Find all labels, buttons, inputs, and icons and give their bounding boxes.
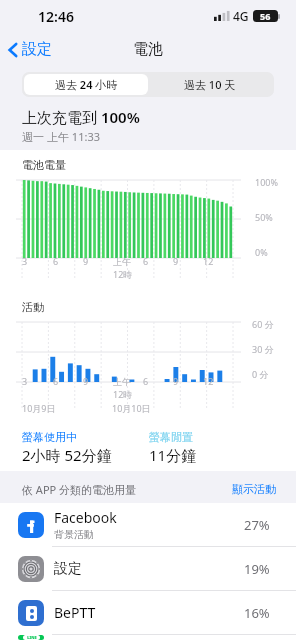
- button[interactable]: Facebook: [0, 503, 296, 546]
- staticText: 設定: [22, 40, 52, 59]
- staticText: 0 分: [252, 368, 269, 380]
- staticText: 60 分: [252, 318, 274, 330]
- staticText: 6: [53, 375, 59, 387]
- button[interactable]: 過去 24 小時: [24, 74, 148, 95]
- other: BePTT: [18, 600, 44, 626]
- staticText: 週一: [22, 129, 47, 144]
- staticText: 電池電量: [22, 158, 66, 172]
- staticText: 螢幕閒置: [149, 430, 193, 444]
- staticText: 19%: [244, 560, 278, 578]
- staticText: 螢幕使用中: [22, 430, 77, 444]
- staticText: 上午 12時: [113, 375, 143, 400]
- staticText: 設定: [54, 560, 82, 578]
- other: 設定: [18, 556, 44, 582]
- staticText: 10月10日: [112, 402, 151, 414]
- staticText: 3: [22, 255, 28, 267]
- staticText: 6: [143, 255, 149, 267]
- other: LINE: [18, 635, 44, 640]
- staticText: 活動: [22, 300, 44, 314]
- staticText: 56: [260, 10, 271, 22]
- staticText: 9: [83, 255, 89, 267]
- button[interactable]: 過去 10 天: [148, 74, 272, 95]
- staticText: 背景活動: [54, 528, 94, 541]
- staticText: 12:46: [38, 7, 74, 26]
- button[interactable]: BePTT: [0, 591, 296, 634]
- button[interactable]: 顯示活動: [230, 480, 278, 498]
- staticText: 9: [173, 255, 179, 267]
- staticText: 4G: [233, 8, 249, 24]
- staticText: 16%: [244, 604, 278, 622]
- staticText: 上次充電到 100%: [22, 107, 140, 127]
- staticText: 電池: [133, 40, 163, 59]
- staticText: 上午 12時: [113, 255, 143, 280]
- staticText: 6: [53, 255, 59, 267]
- staticText: 0%: [255, 246, 268, 258]
- other: Facebook: [18, 512, 44, 538]
- staticText: 27%: [244, 516, 278, 534]
- staticText: 2小時 52分鐘: [22, 445, 112, 465]
- staticText: 12: [203, 375, 214, 387]
- staticText: 10月9日: [22, 402, 56, 414]
- staticText: 30 分: [252, 343, 274, 355]
- staticText: 6: [143, 375, 149, 387]
- staticText: 9: [83, 375, 89, 387]
- staticText: 9: [173, 375, 179, 387]
- staticText: 過去 10 天: [184, 77, 236, 92]
- staticText: 3: [22, 375, 28, 387]
- staticText: 上午 11:33: [47, 129, 100, 144]
- staticText: BePTT: [54, 603, 96, 622]
- staticText: 依 APP 分類的電池用量: [22, 482, 230, 497]
- staticText: Facebook: [54, 508, 117, 527]
- button[interactable]: 設定: [0, 36, 60, 63]
- staticText: 12: [203, 255, 214, 267]
- button[interactable]: 設定: [0, 547, 296, 590]
- staticText: 50%: [255, 211, 273, 223]
- staticText: 過去 24 小時: [55, 77, 118, 92]
- staticText: 11分鐘: [149, 445, 197, 465]
- button[interactable]: LINE: [0, 635, 296, 640]
- staticText: LINE: [27, 635, 37, 640]
- staticText: 顯示活動: [232, 482, 276, 496]
- staticText: 100%: [255, 176, 278, 188]
